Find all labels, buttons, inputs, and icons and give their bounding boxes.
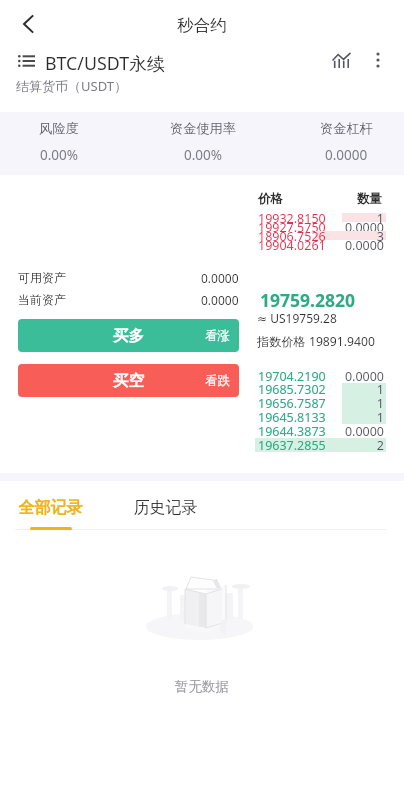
staticText: 0.00% xyxy=(184,146,223,164)
staticText: 19704.2190 xyxy=(258,368,326,381)
staticText: 19656.7587 xyxy=(258,395,326,408)
staticText: 资金使用率 xyxy=(170,120,236,137)
staticText: 0.0000 xyxy=(244,219,384,232)
staticText: 19932.8150 xyxy=(258,210,326,223)
staticText: 指数价格 19891.9400 xyxy=(257,333,375,350)
staticText: 买多 xyxy=(113,326,144,346)
button[interactable]: Back xyxy=(6,2,50,46)
staticText: 19637.2855 xyxy=(258,437,326,450)
staticText: 0.0000 xyxy=(325,146,368,164)
staticText: 价格 xyxy=(258,191,283,207)
button[interactable]: Chart xyxy=(326,45,356,75)
staticText: 看涨 xyxy=(205,328,230,344)
staticText: 结算货币（USDT） xyxy=(16,77,127,95)
staticText: 2 xyxy=(244,437,384,450)
staticText: 19927.5750 xyxy=(258,219,326,232)
staticText: 3 xyxy=(244,228,384,241)
button[interactable]: Market list xyxy=(12,48,40,74)
staticText: 风险度 xyxy=(39,120,79,137)
staticText: 0.0000 xyxy=(244,237,384,250)
staticText: BTC/USDT永续 xyxy=(45,51,165,75)
staticText: 1 xyxy=(244,395,384,408)
staticText: 0.0000 xyxy=(244,423,384,436)
staticText: 0.00% xyxy=(40,146,79,164)
staticText: 1 xyxy=(244,381,384,394)
staticText: 0.0000 xyxy=(201,270,239,286)
staticText: 历史记录 xyxy=(133,498,198,518)
staticText: 资金杠杆 xyxy=(320,120,373,137)
staticText: 0.0000 xyxy=(244,368,384,381)
button[interactable]: 买空 xyxy=(18,364,239,397)
staticText: 1 xyxy=(244,210,384,223)
staticText: 19759.2820 xyxy=(260,288,356,312)
staticText: 1 xyxy=(244,409,384,422)
staticText: 买空 xyxy=(113,371,144,391)
staticText: 19644.3873 xyxy=(258,423,326,436)
staticText: 当前资产 xyxy=(18,292,66,307)
staticText: 19904.0261 xyxy=(258,237,326,250)
staticText: 全部记录 xyxy=(18,498,83,518)
staticText: 0.0000 xyxy=(201,292,239,308)
button[interactable]: 全部记录 xyxy=(18,494,83,534)
staticText: 18906.7526 xyxy=(258,228,326,241)
staticText: ≈ US19759.28 xyxy=(257,310,337,326)
staticText: 19685.7302 xyxy=(258,381,326,394)
staticText: 暂无数据 xyxy=(0,678,404,695)
staticText: 数量 xyxy=(300,191,382,207)
button[interactable]: 历史记录 xyxy=(133,494,198,534)
staticText: 看跌 xyxy=(205,373,230,389)
staticText: 19645.8133 xyxy=(258,409,326,422)
staticText: 秒合约 xyxy=(0,15,404,36)
button[interactable]: More options xyxy=(363,45,393,75)
button[interactable]: 买多 xyxy=(18,319,239,352)
staticText: 可用资产 xyxy=(18,270,66,285)
